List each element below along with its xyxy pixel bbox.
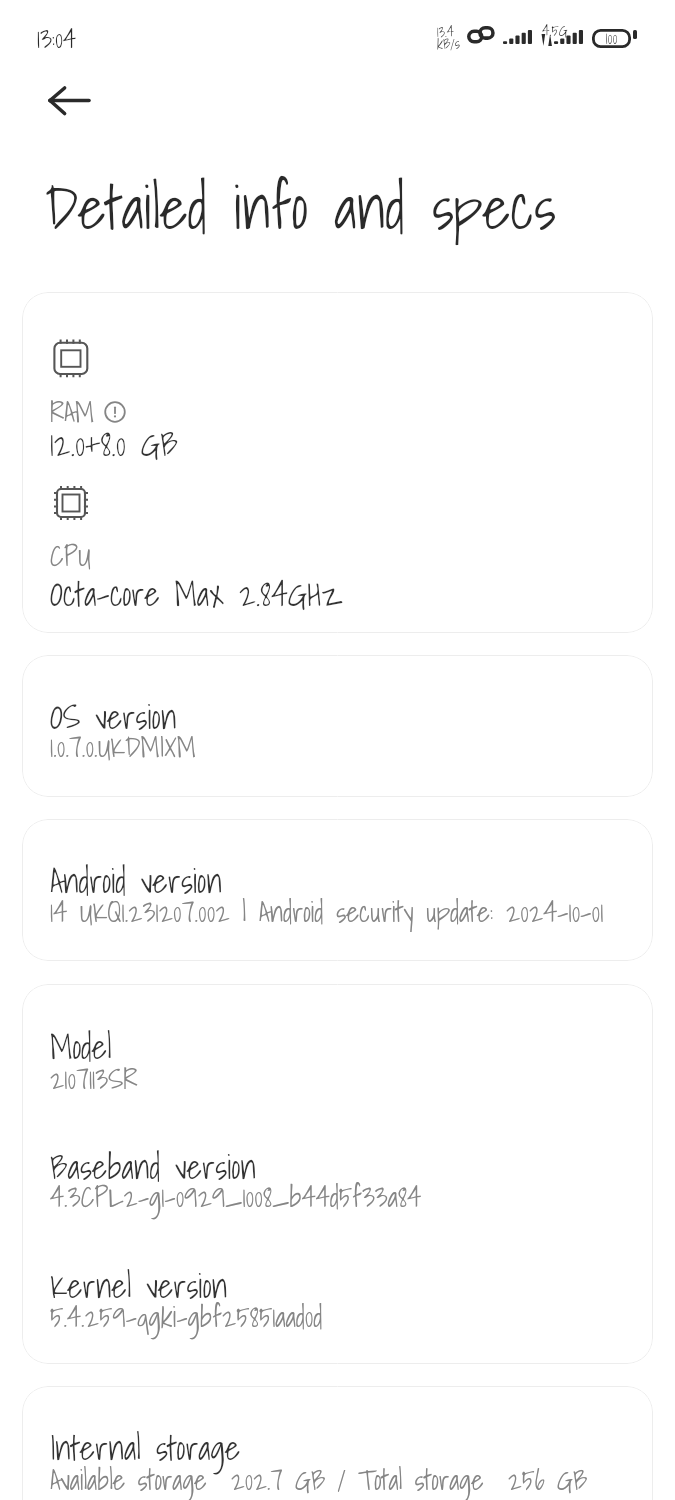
staticText: 13:04	[37, 17, 77, 59]
staticText: 14 UKQ1.231207.002 | Android security up…	[50, 889, 604, 934]
staticText: 12.0+8.0 GB	[50, 417, 179, 470]
staticText: CPU	[50, 533, 91, 578]
staticText: 2107113SR	[50, 1056, 138, 1101]
button[interactable]: Internal storage	[22, 1386, 653, 1500]
button[interactable]: Model	[22, 984, 653, 1364]
staticText: RAM	[50, 389, 95, 434]
staticText: 13.4	[437, 21, 454, 43]
staticText: Model	[50, 1020, 112, 1073]
staticText: kB/s	[437, 33, 460, 55]
staticText: Octa-core Max 2.84GHz	[50, 567, 342, 620]
staticText: Available storage 202.7 GB / Total stora…	[50, 1458, 588, 1500]
staticText: OS version	[50, 690, 177, 743]
button[interactable]: Android version	[22, 819, 653, 961]
staticText: Internal storage	[50, 1421, 241, 1474]
button[interactable]: Back	[24, 74, 90, 140]
staticText: 4.5G	[542, 18, 568, 42]
staticText: 1.0.7.0.UKDMIXM	[50, 724, 196, 769]
staticText: 4.3CPL2-g1-0929_1008_b44d5f33a84	[50, 1174, 422, 1219]
button[interactable]: RAM	[22, 292, 653, 633]
staticText: Android version	[50, 854, 223, 907]
staticText: 5.4.259-qgki-gbf25851aad0d	[50, 1294, 323, 1339]
staticText: 100	[592, 25, 631, 51]
staticText: Kernel version	[50, 1259, 228, 1312]
staticText: Baseband version	[50, 1140, 257, 1193]
button[interactable]: OS version	[22, 655, 653, 797]
staticText: Detailed info and specs	[45, 159, 556, 255]
